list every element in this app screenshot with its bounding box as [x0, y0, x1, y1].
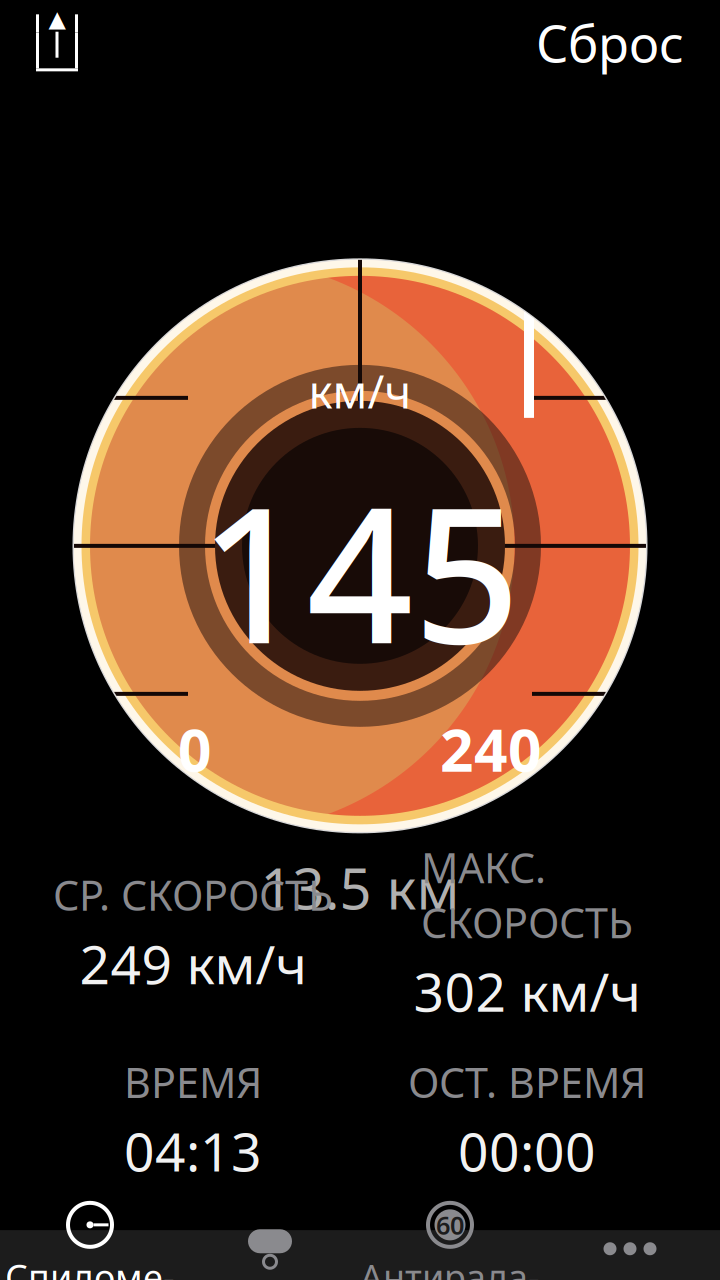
staticText: ВРЕМЯ — [124, 1054, 262, 1109]
staticText: км/ч — [308, 361, 411, 421]
staticText: 00:00 — [458, 1115, 596, 1186]
staticText: 0 — [178, 710, 212, 788]
staticText: 302 км/ч — [413, 956, 640, 1026]
staticText: Спидометр — [5, 1253, 175, 1280]
button[interactable]: Спидометр — [0, 1230, 180, 1280]
button[interactable]: Разгон — [180, 1230, 360, 1280]
staticText: 13.5 км — [260, 850, 459, 925]
staticText: Сброс — [536, 9, 684, 76]
button[interactable]: 60 — [360, 1230, 540, 1280]
staticText: МАКС. СКОРОСТЬ — [421, 840, 633, 950]
staticText: 240 — [440, 710, 542, 788]
button[interactable]: Поделиться — [22, 7, 92, 79]
staticText: 145 — [199, 447, 520, 695]
staticText: ▲ — [48, 6, 65, 32]
staticText: 04:13 — [124, 1115, 262, 1186]
staticText: СР. СКОРОСТЬ — [53, 867, 333, 922]
staticText: ОСТ. ВРЕМЯ — [408, 1054, 646, 1109]
staticText: Антирадар — [360, 1253, 540, 1280]
button[interactable]: Сброс — [522, 7, 698, 79]
button[interactable]: Еще — [540, 1230, 720, 1280]
staticText: 60 — [436, 1208, 464, 1242]
staticText: 249 км/ч — [79, 928, 306, 999]
